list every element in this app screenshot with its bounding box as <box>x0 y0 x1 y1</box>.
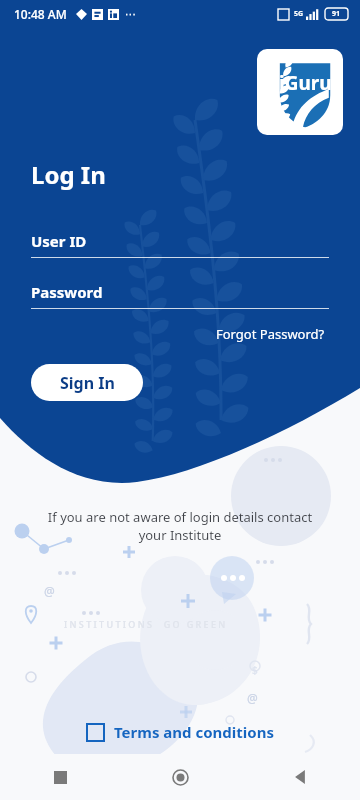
staticText: iGuru <box>279 70 332 96</box>
button[interactable]: Forgot Password? <box>212 321 329 347</box>
button[interactable]: Sign In <box>31 364 143 401</box>
staticText: Log In <box>31 158 106 191</box>
staticText: @ <box>44 583 55 599</box>
staticText: 91 <box>332 9 341 19</box>
staticText: ⋯ <box>125 8 136 21</box>
button[interactable]: Terms and conditions <box>79 716 282 748</box>
staticText: Sign In <box>60 372 115 394</box>
staticText: Password <box>31 282 103 302</box>
staticText: I N S T I T U T I O N S G O G R E E N <box>64 618 226 630</box>
staticText: 5G <box>294 9 304 19</box>
staticText: $ <box>252 663 258 677</box>
staticText: @ <box>247 690 258 706</box>
button[interactable]: Back <box>240 754 360 800</box>
staticText: 10:48 AM <box>14 6 67 22</box>
button[interactable]: User ID <box>31 231 329 258</box>
button[interactable]: Recents <box>0 754 120 800</box>
staticText: User ID <box>31 231 87 251</box>
button[interactable]: iGuru logo <box>257 49 343 135</box>
staticText: Terms and conditions <box>114 722 274 742</box>
staticText: If you are not aware of login details co… <box>34 508 326 544</box>
button[interactable]: Home <box>120 754 240 800</box>
button[interactable]: Password <box>31 282 329 309</box>
